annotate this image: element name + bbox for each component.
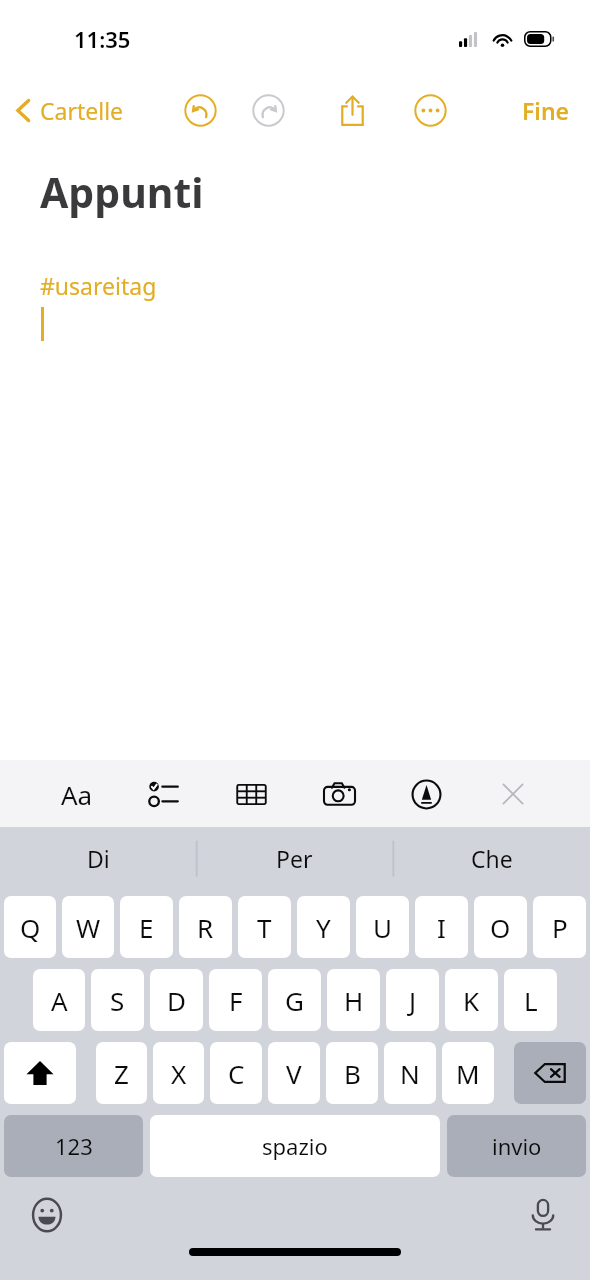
button[interactable]: F — [209, 969, 262, 1031]
button[interactable]: B — [326, 1042, 378, 1104]
staticText: N — [400, 1056, 420, 1091]
button[interactable]: K — [445, 969, 498, 1031]
button[interactable]: Backspace — [514, 1042, 586, 1104]
staticText: F — [229, 983, 243, 1018]
staticText: S — [110, 983, 125, 1018]
staticText: V — [286, 1056, 302, 1091]
button[interactable]: Fine — [514, 89, 578, 132]
button[interactable]: Emoji — [20, 1188, 74, 1242]
staticText: 11:35 — [74, 24, 131, 54]
button[interactable]: Cartelle — [10, 89, 129, 132]
staticText: Appunti — [40, 164, 204, 220]
staticText: Y — [316, 910, 331, 945]
staticText: 123 — [55, 1131, 93, 1161]
staticText: K — [463, 983, 480, 1018]
staticText: I — [437, 910, 446, 945]
staticText: A — [51, 983, 68, 1018]
button[interactable]: H — [327, 969, 380, 1031]
staticText: spazio — [262, 1131, 328, 1161]
staticText: M — [456, 1056, 480, 1091]
button[interactable]: Hide keyboard — [486, 767, 540, 821]
button[interactable]: Checklist — [137, 767, 191, 821]
button[interactable]: G — [268, 969, 321, 1031]
staticText: J — [409, 983, 417, 1018]
staticText: W — [76, 910, 101, 945]
staticText: L — [524, 983, 538, 1018]
staticText: Fine — [522, 95, 570, 126]
staticText: T — [257, 910, 272, 945]
button[interactable]: O — [474, 896, 527, 958]
button[interactable]: Q — [4, 896, 56, 958]
staticText: U — [373, 910, 393, 945]
staticText: X — [171, 1056, 187, 1091]
staticText: E — [139, 910, 154, 945]
staticText: G — [285, 983, 304, 1018]
button[interactable]: I — [415, 896, 468, 958]
button[interactable]: C — [210, 1042, 262, 1104]
staticText: H — [344, 983, 364, 1018]
button[interactable]: Undo — [175, 85, 225, 135]
button[interactable]: U — [356, 896, 409, 958]
staticText: O — [490, 910, 511, 945]
staticText: Per — [276, 843, 313, 874]
staticText: Cartelle — [40, 95, 124, 126]
button[interactable]: Dictation — [516, 1188, 570, 1242]
button[interactable]: S — [91, 969, 144, 1031]
staticText: B — [344, 1056, 361, 1091]
button[interactable]: M — [442, 1042, 494, 1104]
button[interactable]: spazio — [150, 1115, 440, 1177]
button[interactable]: Per — [196, 827, 393, 889]
button[interactable]: More options — [405, 85, 455, 135]
staticText: R — [197, 910, 214, 945]
staticText: Z — [114, 1056, 129, 1091]
button[interactable]: R — [179, 896, 232, 958]
staticText: Che — [471, 843, 513, 874]
button[interactable]: V — [268, 1042, 320, 1104]
staticText: C — [228, 1056, 245, 1091]
button[interactable]: X — [153, 1042, 204, 1104]
button[interactable]: W — [62, 896, 114, 958]
button[interactable]: L — [504, 969, 557, 1031]
button[interactable]: Share — [327, 85, 377, 135]
staticText: #usareitag — [40, 270, 157, 301]
button[interactable]: Shift — [4, 1042, 76, 1104]
button[interactable]: Y — [297, 896, 350, 958]
button[interactable]: D — [150, 969, 203, 1031]
button[interactable]: Camera — [312, 767, 366, 821]
staticText: Q — [20, 910, 41, 945]
button[interactable]: A — [33, 969, 85, 1031]
button[interactable]: Redo — [243, 85, 293, 135]
staticText: P — [552, 910, 568, 945]
staticText: Di — [87, 843, 110, 874]
button[interactable]: Text format — [50, 767, 104, 821]
button[interactable]: Markup — [399, 767, 453, 821]
staticText: Aa — [61, 777, 93, 812]
button[interactable]: P — [533, 896, 586, 958]
button[interactable]: Di — [0, 827, 196, 889]
button[interactable]: J — [386, 969, 439, 1031]
button[interactable]: invio — [447, 1115, 586, 1177]
staticText: D — [167, 983, 186, 1018]
staticText: invio — [492, 1131, 542, 1161]
button[interactable]: 123 — [4, 1115, 143, 1177]
button[interactable]: Z — [96, 1042, 147, 1104]
button[interactable]: Che — [393, 827, 590, 889]
button[interactable]: E — [120, 896, 173, 958]
button[interactable]: Table — [224, 767, 278, 821]
button[interactable]: N — [384, 1042, 436, 1104]
button[interactable]: T — [238, 896, 291, 958]
